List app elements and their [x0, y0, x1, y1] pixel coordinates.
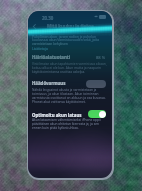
button[interactable]: Häädövarmuus: [86, 80, 106, 88]
staticText: Puhelimen akun, ja sen radion ja puhelun…: [32, 34, 107, 46]
staticText: Akun lataamisen vähentämiseksi iPhone op…: [32, 118, 107, 130]
button[interactable]: Back: [30, 22, 39, 31]
staticText: Häiriöalatuotanti: [32, 54, 71, 60]
staticText: Häädövarmuus: [32, 80, 66, 86]
staticText: Mitä kuuluu ja tietoa: [47, 23, 94, 29]
button[interactable]: Optimoitu akun lataus: [88, 110, 106, 118]
staticText: 88 %: [96, 55, 106, 61]
staticText: 20.30: [42, 15, 54, 21]
staticText: Nähdä levypainot akusta ja varmistetaan …: [32, 88, 107, 104]
staticText: Lisätietoja: [32, 46, 48, 50]
staticText: Virä ilmaise akun tapahtumien varmistuva…: [32, 62, 107, 74]
staticText: Optimoitu akun lataus: [32, 112, 82, 118]
